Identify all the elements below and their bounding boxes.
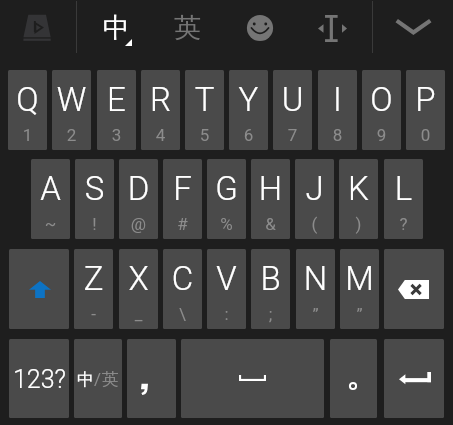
staticText: N <box>296 259 335 298</box>
staticText: 2 <box>52 125 91 145</box>
staticText: - <box>74 304 113 324</box>
button[interactable]: L <box>384 159 423 239</box>
staticText: G <box>207 169 246 208</box>
staticText: T <box>185 80 224 119</box>
button[interactable]: Enter <box>384 339 444 418</box>
staticText: % <box>207 214 246 234</box>
staticText: H <box>251 169 290 208</box>
staticText: ( <box>295 214 334 234</box>
staticText: D <box>119 169 158 208</box>
staticText: / <box>94 369 102 389</box>
button[interactable]: E <box>97 70 136 150</box>
staticText: X <box>119 259 158 298</box>
button[interactable]: Input methods <box>14 8 54 44</box>
staticText: Y <box>229 80 268 119</box>
button[interactable]: C <box>163 249 202 329</box>
staticText: ” <box>296 304 335 324</box>
button[interactable]: Move cursor <box>318 15 347 42</box>
button[interactable]: J <box>295 159 334 239</box>
staticText: & <box>251 214 290 234</box>
staticText: M <box>340 259 379 298</box>
staticText: K <box>339 169 378 208</box>
button[interactable]: X <box>119 249 158 329</box>
staticText: Z <box>74 259 113 298</box>
staticText: 中 <box>103 11 130 45</box>
staticText: 英 <box>102 369 119 390</box>
staticText: @ <box>119 214 158 234</box>
staticText: 4 <box>141 125 180 145</box>
staticText: E <box>97 80 136 119</box>
button[interactable]: W <box>52 70 91 150</box>
button[interactable]: B <box>251 249 290 329</box>
staticText: ? <box>384 214 423 234</box>
staticText: C <box>163 259 202 298</box>
staticText: F <box>163 169 202 208</box>
button[interactable]: T <box>185 70 224 150</box>
staticText: : <box>207 304 246 324</box>
staticText: P <box>406 80 445 119</box>
button[interactable]: R <box>141 70 180 150</box>
button[interactable]: V <box>207 249 246 329</box>
staticText: V <box>207 259 246 298</box>
button[interactable]: P <box>406 70 445 150</box>
staticText: 7 <box>273 125 312 145</box>
button[interactable] <box>127 339 176 418</box>
staticText: I <box>318 80 357 119</box>
staticText: Q <box>8 80 47 119</box>
staticText: A <box>31 169 70 208</box>
button[interactable] <box>330 339 377 418</box>
button[interactable]: K <box>339 159 378 239</box>
button[interactable]: Space <box>181 339 324 418</box>
button[interactable]: Y <box>229 70 268 150</box>
staticText: 英 <box>174 11 201 45</box>
button[interactable]: I <box>318 70 357 150</box>
button[interactable]: S <box>75 159 114 239</box>
staticText: ~ <box>31 214 70 234</box>
staticText: 8 <box>318 125 357 145</box>
staticText: S <box>75 169 114 208</box>
staticText: W <box>52 80 91 119</box>
button[interactable]: Emoji <box>244 12 276 44</box>
staticText: 6 <box>229 125 268 145</box>
button[interactable]: M <box>340 249 379 329</box>
staticText: L <box>384 169 423 208</box>
button[interactable]: 中 <box>74 339 122 418</box>
button[interactable]: D <box>119 159 158 239</box>
button[interactable]: U <box>273 70 312 150</box>
button[interactable]: O <box>362 70 401 150</box>
staticText: 3 <box>97 125 136 145</box>
button[interactable]: H <box>251 159 290 239</box>
button[interactable]: 中 <box>94 6 138 50</box>
button[interactable]: Q <box>8 70 47 150</box>
staticText: # <box>163 214 202 234</box>
button[interactable]: A <box>31 159 70 239</box>
button[interactable]: F <box>163 159 202 239</box>
staticText: R <box>141 80 180 119</box>
button[interactable]: 123? <box>9 339 69 418</box>
staticText: ” <box>340 304 379 324</box>
staticText: 123? <box>13 365 66 394</box>
staticText: 9 <box>362 125 401 145</box>
staticText: U <box>273 80 312 119</box>
staticText: 5 <box>185 125 224 145</box>
button[interactable]: Shift <box>9 249 69 329</box>
staticText: 中 <box>77 369 94 390</box>
staticText: ! <box>75 214 114 234</box>
button[interactable]: G <box>207 159 246 239</box>
button[interactable]: Backspace <box>384 249 444 329</box>
staticText: 1 <box>8 125 47 145</box>
staticText: J <box>295 169 334 208</box>
button[interactable]: 英 <box>165 6 209 50</box>
staticText: _ <box>119 304 158 324</box>
staticText: B <box>251 259 290 298</box>
staticText: 0 <box>406 125 445 145</box>
staticText: ) <box>339 214 378 234</box>
button[interactable]: Hide keyboard <box>394 18 433 35</box>
staticText: ; <box>251 304 290 324</box>
button[interactable]: N <box>296 249 335 329</box>
staticText: \ <box>163 304 202 324</box>
button[interactable]: Z <box>74 249 113 329</box>
staticText: O <box>362 80 401 119</box>
